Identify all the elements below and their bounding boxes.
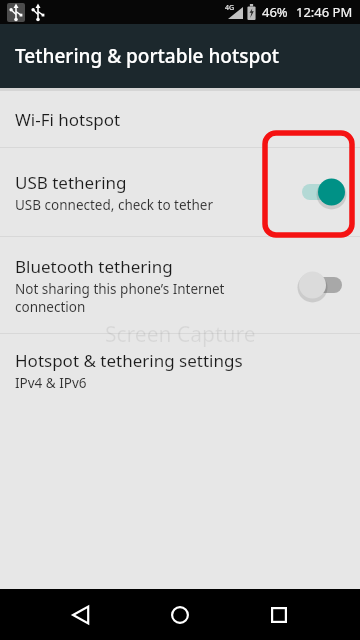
button[interactable]: Recent apps <box>255 591 303 639</box>
staticText: Not sharing this phone’s Internet connec… <box>15 280 225 316</box>
button[interactable]: Turn on <box>295 267 349 303</box>
button[interactable]: Bluetooth tethering <box>0 237 360 333</box>
staticText: IPv4 & IPv6 <box>15 374 87 392</box>
button[interactable]: Back <box>57 591 105 639</box>
staticText: USB tethering <box>15 171 127 194</box>
button[interactable]: Turn off <box>295 174 349 210</box>
staticText: 4G <box>225 3 235 13</box>
staticText: 12:46 PM <box>296 3 353 21</box>
staticText: USB connected, check to tether <box>15 196 213 214</box>
button[interactable]: Hotspot & tethering settings <box>0 334 360 406</box>
staticText: Tethering & portable hotspot <box>15 43 280 69</box>
staticText: Screen Capture <box>105 320 256 349</box>
staticText: Bluetooth tethering <box>15 255 173 278</box>
staticText: Hotspot & tethering settings <box>15 349 243 372</box>
staticText: Wi-Fi hotspot <box>15 108 121 131</box>
button[interactable]: USB tethering <box>0 148 360 236</box>
button[interactable]: Wi-Fi hotspot <box>0 91 360 147</box>
staticText: 46% <box>262 3 288 21</box>
button[interactable]: Home <box>156 591 204 639</box>
